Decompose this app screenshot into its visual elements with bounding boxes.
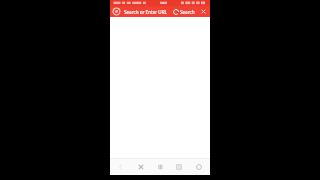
button[interactable]: Tabs: [171, 159, 187, 175]
button[interactable]: Site settings: [112, 7, 121, 16]
button[interactable]: Bookmarks: [152, 159, 168, 175]
button[interactable]: Close: [199, 7, 208, 16]
button[interactable]: Menu: [191, 159, 207, 175]
staticText: Search: [180, 9, 195, 15]
button[interactable]: Search: [172, 7, 196, 16]
button[interactable]: Stop: [133, 159, 149, 175]
staticText: Search or Enter URL: [124, 9, 167, 15]
button[interactable]: Search or Enter URL: [124, 6, 172, 17]
